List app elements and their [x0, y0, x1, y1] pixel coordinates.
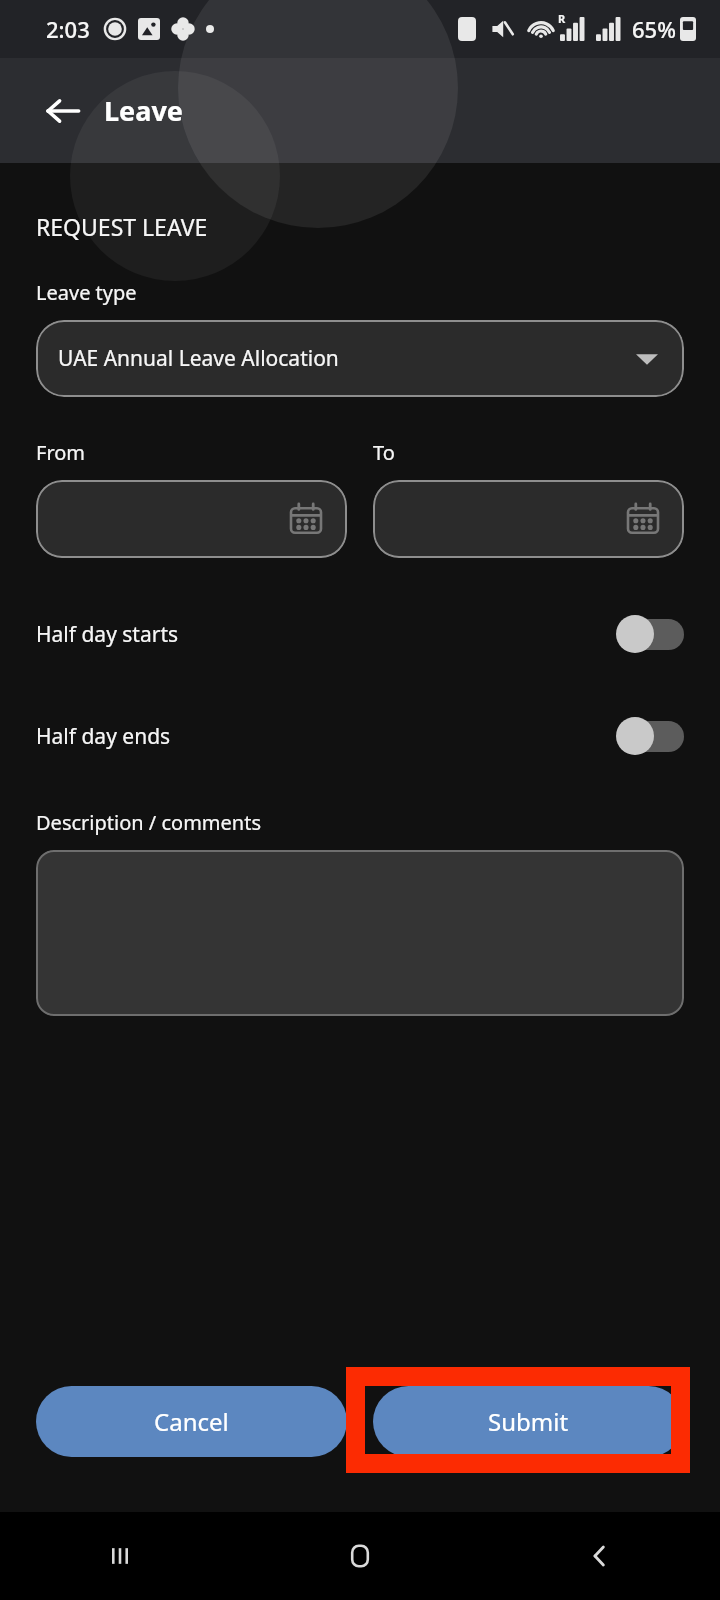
staticText: R — [558, 11, 566, 26]
staticText: Leave — [104, 92, 183, 129]
staticText: To — [373, 439, 395, 466]
button[interactable]: Back — [480, 1512, 720, 1600]
staticText: Leave type — [36, 279, 137, 306]
button[interactable]: Home — [240, 1512, 480, 1600]
staticText: 65% — [632, 14, 676, 44]
staticText: 2:03 — [46, 14, 90, 44]
button[interactable]: Pick From date — [36, 480, 347, 558]
button[interactable]: Cancel — [36, 1386, 347, 1457]
staticText: REQUEST LEAVE — [36, 211, 208, 242]
staticText: Submit — [488, 1405, 569, 1438]
button[interactable]: Half day starts — [0, 608, 720, 660]
staticText: Half day ends — [36, 722, 171, 751]
staticText: Half day starts — [36, 620, 179, 649]
button[interactable]: UAE Annual Leave Allocation — [36, 320, 684, 397]
staticText: UAE Annual Leave Allocation — [58, 344, 339, 373]
button[interactable]: Recents — [0, 1512, 240, 1600]
staticText: From — [36, 439, 86, 466]
button[interactable]: Pick To date — [373, 480, 684, 558]
button[interactable] — [36, 850, 684, 1016]
button[interactable]: Submit — [373, 1386, 684, 1457]
button[interactable]: Half day ends — [0, 710, 720, 762]
button[interactable]: Back — [36, 84, 90, 138]
staticText: Description / comments — [36, 809, 261, 836]
staticText: Cancel — [154, 1405, 229, 1438]
